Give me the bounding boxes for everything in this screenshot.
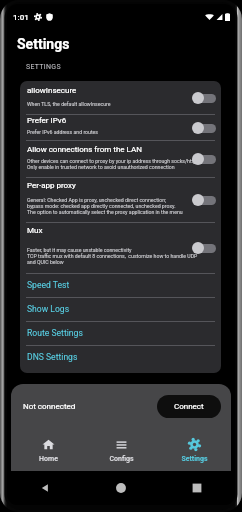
button[interactable]: DNS Settings — [20, 346, 221, 369]
button[interactable]: Home — [11, 429, 85, 471]
staticText: Allow connections from the LAN — [27, 145, 142, 154]
staticText: 1:01 — [13, 13, 29, 22]
staticText: Other devices can connect to proxy by yo… — [27, 158, 198, 164]
staticText: SETTINGS — [26, 63, 61, 71]
button[interactable]: Mux — [20, 223, 221, 273]
staticText: Faster, but it may cause unstable connec… — [27, 247, 132, 253]
button[interactable]: Show Logs — [20, 298, 221, 321]
staticText: Home — [39, 455, 58, 463]
staticText: Show Logs — [27, 304, 70, 314]
button[interactable]: Home — [113, 480, 129, 496]
staticText: Settings — [17, 36, 70, 52]
button[interactable]: Recents — [189, 480, 205, 496]
button[interactable]: Toggle — [192, 241, 216, 255]
staticText: bypass mode: checked app directly connec… — [27, 203, 176, 209]
button[interactable]: Allow connections from the LAN — [20, 141, 221, 177]
button[interactable]: allowInsecure — [20, 81, 221, 114]
button[interactable]: Route Settings — [20, 322, 221, 345]
staticText: Speed Test — [27, 280, 70, 290]
staticText: When TLS, the default allowInsecure — [27, 101, 111, 107]
staticText: Not connected — [23, 402, 76, 411]
button[interactable]: Toggle — [192, 121, 216, 135]
staticText: Prefer IPv6 address and routes — [27, 129, 99, 135]
staticText: DNS Settings — [27, 352, 78, 362]
staticText: and QUIC below — [27, 259, 64, 265]
button[interactable]: Toggle — [192, 152, 216, 166]
staticText: Mux — [27, 226, 43, 235]
button[interactable]: Toggle — [192, 193, 216, 207]
staticText: General: Checked App is proxy, unchecked… — [27, 197, 167, 203]
staticText: Route Settings — [27, 328, 83, 338]
staticText: Settings — [181, 455, 208, 463]
staticText: Connect — [174, 402, 204, 411]
button[interactable]: Connect — [157, 395, 221, 418]
staticText: allowInsecure — [27, 86, 77, 95]
button[interactable]: Speed Test — [20, 274, 221, 297]
button[interactable]: Toggle — [192, 91, 216, 105]
staticText: The option to automatically select the p… — [27, 209, 183, 215]
staticText: Per-app proxy — [27, 181, 76, 190]
button[interactable]: Prefer IPv6 — [20, 115, 221, 140]
button[interactable]: Per-app proxy — [20, 178, 221, 222]
button[interactable]: Back — [37, 480, 53, 496]
staticText: TCP traffic mux with default 8 connectio… — [27, 253, 198, 259]
staticText: Configs — [109, 455, 134, 463]
button[interactable]: Configs — [85, 429, 158, 471]
staticText: Prefer IPv6 — [27, 116, 67, 125]
staticText: Only enable in trusted network to avoid … — [27, 164, 175, 170]
button[interactable]: Settings — [158, 429, 231, 471]
